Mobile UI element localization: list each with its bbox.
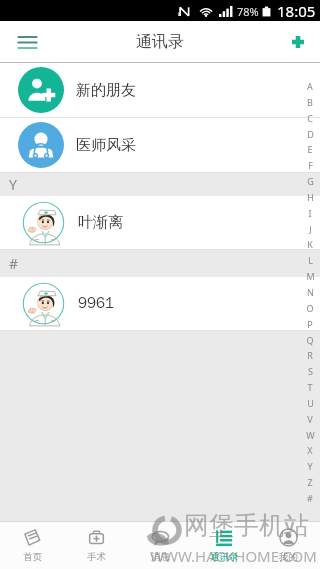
staticText: 医师风采 <box>76 136 136 155</box>
staticText: 新的朋友 <box>76 81 136 100</box>
staticText: Y <box>9 175 17 194</box>
staticText: T <box>307 381 313 393</box>
staticText: I <box>308 207 312 219</box>
button[interactable]: 医师风采 <box>0 118 320 172</box>
staticText: B <box>307 96 313 108</box>
staticText: W <box>306 429 315 441</box>
staticText: M <box>306 270 315 282</box>
staticText: D <box>307 128 314 140</box>
staticText: 消息 <box>151 551 170 563</box>
staticText: G <box>307 175 314 187</box>
staticText: Q <box>306 334 314 346</box>
staticText: # <box>307 492 313 504</box>
staticText: X <box>307 444 313 456</box>
staticText: # <box>9 254 19 273</box>
staticText: 9961 <box>78 294 114 313</box>
staticText: N <box>307 286 314 298</box>
staticText: WWW.HACKHOME.COM <box>150 546 317 566</box>
button[interactable]: 消息 <box>128 521 192 569</box>
staticText: 18:05 <box>277 1 316 21</box>
button[interactable]: 通讯录 <box>192 521 256 569</box>
staticText: V <box>307 413 313 425</box>
staticText: 通讯录 <box>210 551 239 563</box>
staticText: A <box>307 80 313 92</box>
staticText: E <box>307 143 313 155</box>
staticText: 网堡手机站 <box>184 510 309 541</box>
staticText: Z <box>307 476 313 488</box>
button[interactable]: 手术 <box>64 521 128 569</box>
staticText: J <box>309 223 312 235</box>
button[interactable]: 我的 <box>256 521 320 569</box>
staticText: F <box>308 159 313 171</box>
staticText: O <box>306 302 314 314</box>
button[interactable]: 新的朋友 <box>0 63 320 117</box>
staticText: 78% <box>237 4 259 19</box>
staticText: 手术 <box>87 551 106 563</box>
staticText: K <box>307 238 313 250</box>
staticText: C <box>307 112 313 124</box>
staticText: R <box>307 349 313 361</box>
staticText: U <box>307 397 314 409</box>
button[interactable]: Add contact <box>285 29 311 55</box>
staticText: H <box>307 191 314 203</box>
button[interactable]: Menu <box>8 23 46 61</box>
staticText: S <box>308 365 313 377</box>
button[interactable]: 首页 <box>0 521 64 569</box>
staticText: 通讯录 <box>136 32 184 52</box>
staticText: P <box>307 318 313 330</box>
staticText: 首页 <box>23 551 42 563</box>
button[interactable]: 叶渐离 <box>0 196 320 249</box>
staticText: 叶渐离 <box>78 213 123 232</box>
staticText: Y <box>307 460 313 472</box>
button[interactable]: 9961 <box>0 277 320 330</box>
staticText: 我的 <box>279 551 298 563</box>
staticText: L <box>308 254 313 266</box>
